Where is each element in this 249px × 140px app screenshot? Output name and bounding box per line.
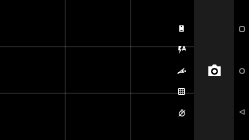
button[interactable]: Flash: auto	[171, 39, 192, 60]
button[interactable]: Take photo	[196, 52, 232, 88]
button[interactable]: Home	[234, 63, 249, 78]
button[interactable]: Back	[234, 104, 249, 119]
button[interactable]: HDR off	[171, 60, 192, 81]
button[interactable]: Grid on	[171, 81, 192, 102]
button[interactable]: Timer off	[171, 102, 192, 123]
button[interactable]: Recents	[234, 21, 249, 36]
button[interactable]: Storage: phone	[171, 18, 192, 39]
